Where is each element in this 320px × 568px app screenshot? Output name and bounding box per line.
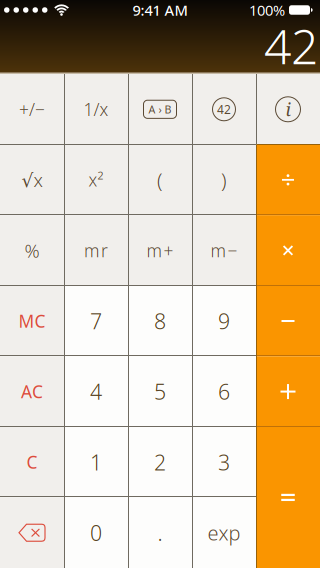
button[interactable]: +/−: [0, 74, 64, 145]
button[interactable]: 8: [128, 286, 192, 356]
staticText: (: [157, 167, 163, 193]
staticText: √x: [21, 167, 42, 192]
staticText: 9:41 AM: [132, 0, 187, 20]
button[interactable]: C: [0, 427, 64, 497]
button[interactable]: 6: [192, 356, 256, 427]
staticText: .: [157, 518, 162, 547]
button[interactable]: .: [128, 497, 192, 568]
button[interactable]: Add: [256, 356, 320, 427]
button[interactable]: Multiply: [256, 215, 320, 286]
button[interactable]: 1/x: [64, 74, 128, 145]
button[interactable]: √x: [0, 145, 64, 215]
staticText: MC: [18, 309, 45, 332]
staticText: 100%: [249, 0, 285, 20]
button[interactable]: 4: [64, 356, 128, 427]
button[interactable]: ): [192, 145, 256, 215]
staticText: m+: [146, 239, 173, 262]
staticText: +/−: [19, 98, 45, 121]
staticText: 42: [217, 101, 231, 117]
staticText: 9: [218, 307, 230, 335]
staticText: AC: [21, 380, 43, 403]
staticText: 1/x: [83, 98, 108, 121]
staticText: 1: [90, 448, 102, 476]
button[interactable]: 0: [64, 497, 128, 568]
button[interactable]: Equals: [256, 427, 320, 568]
staticText: 0: [90, 518, 102, 547]
staticText: 6: [218, 377, 230, 406]
button[interactable]: 2: [128, 427, 192, 497]
button[interactable]: 3: [192, 427, 256, 497]
staticText: x²: [88, 168, 103, 191]
button[interactable]: (: [128, 145, 192, 215]
staticText: 7: [90, 307, 102, 335]
staticText: 2: [154, 448, 166, 476]
staticText: ): [221, 167, 227, 193]
button[interactable]: %: [0, 215, 64, 286]
button[interactable]: AC: [0, 356, 64, 427]
staticText: 4: [90, 377, 102, 406]
button[interactable]: x²: [64, 145, 128, 215]
button[interactable]: Subtract: [256, 286, 320, 356]
button[interactable]: Info: [256, 74, 320, 145]
staticText: A › B: [148, 102, 171, 116]
button[interactable]: 9: [192, 286, 256, 356]
button[interactable]: exp: [192, 497, 256, 568]
button[interactable]: m+: [128, 215, 192, 286]
button[interactable]: Delete: [0, 497, 64, 568]
staticText: i: [285, 97, 290, 121]
staticText: C: [26, 451, 37, 474]
staticText: m−: [210, 239, 237, 262]
staticText: exp: [207, 519, 240, 546]
button[interactable]: 42: [192, 74, 256, 145]
staticText: mr: [84, 239, 108, 262]
staticText: 5: [154, 377, 166, 406]
button[interactable]: 5: [128, 356, 192, 427]
staticText: 3: [218, 448, 230, 476]
staticText: %: [24, 238, 39, 263]
button[interactable]: Divide: [256, 145, 320, 215]
button[interactable]: MC: [0, 286, 64, 356]
button[interactable]: mr: [64, 215, 128, 286]
button[interactable]: 1: [64, 427, 128, 497]
staticText: 42: [264, 14, 318, 77]
button[interactable]: A › B: [128, 74, 192, 145]
button[interactable]: m−: [192, 215, 256, 286]
staticText: 8: [154, 307, 166, 335]
button[interactable]: 7: [64, 286, 128, 356]
